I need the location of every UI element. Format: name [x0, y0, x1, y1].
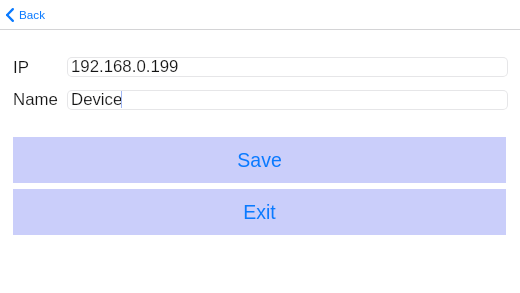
button[interactable]: Exit — [13, 189, 506, 235]
staticText: Save — [237, 149, 282, 171]
staticText: IP — [13, 58, 29, 77]
staticText: Name — [13, 90, 58, 109]
button[interactable]: Save — [13, 137, 506, 183]
button[interactable]: Device — [67, 90, 508, 110]
staticText: Device — [71, 90, 123, 109]
button[interactable]: Back — [0, 0, 58, 29]
button[interactable]: 192.168.0.199 — [67, 57, 508, 77]
staticText: Back — [19, 8, 45, 21]
staticText: 192.168.0.199 — [71, 57, 179, 76]
staticText: Exit — [243, 201, 276, 223]
